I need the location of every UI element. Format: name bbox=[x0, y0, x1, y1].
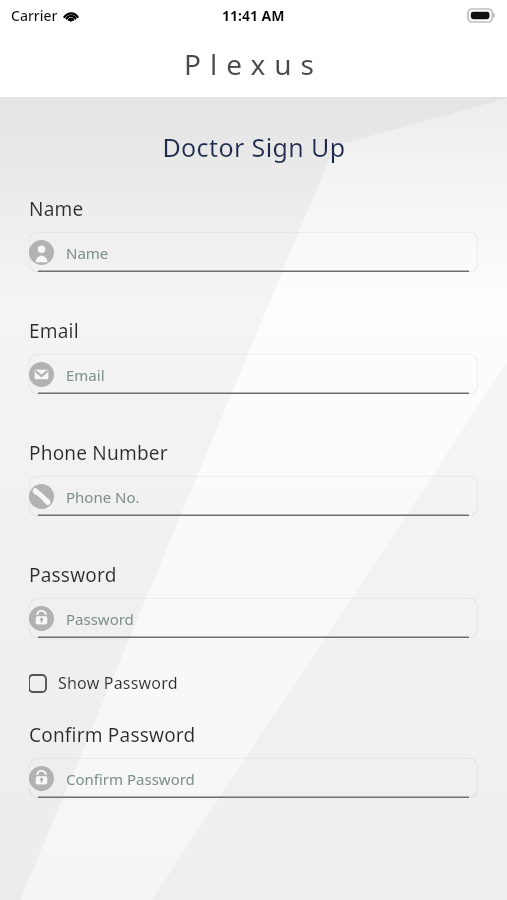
staticText: Confirm Password bbox=[66, 769, 195, 789]
staticText: Carrier bbox=[11, 6, 58, 25]
button[interactable]: Password bbox=[29, 598, 478, 638]
other: Email bbox=[29, 362, 54, 387]
button[interactable]: Name bbox=[29, 232, 478, 272]
button[interactable]: Show Password bbox=[29, 668, 178, 698]
other: Name bbox=[29, 240, 54, 265]
staticText: Password bbox=[29, 562, 117, 588]
button[interactable]: Phone Number bbox=[29, 476, 478, 516]
staticText: Phone No. bbox=[66, 487, 140, 507]
staticText: Confirm Password bbox=[29, 722, 196, 748]
other: Confirm Password bbox=[29, 766, 54, 791]
staticText: Phone Number bbox=[29, 440, 168, 466]
staticText: Plexus bbox=[184, 45, 323, 83]
staticText: Name bbox=[66, 243, 109, 263]
other: Password bbox=[29, 606, 54, 631]
other: Phone Number bbox=[29, 484, 54, 509]
staticText: Show Password bbox=[58, 672, 178, 694]
staticText: Email bbox=[66, 365, 105, 385]
button[interactable]: Confirm Password bbox=[29, 758, 478, 798]
staticText: Name bbox=[29, 196, 84, 222]
staticText: Email bbox=[29, 318, 79, 344]
staticText: Password bbox=[66, 609, 134, 629]
staticText: 11:41 AM bbox=[222, 6, 285, 25]
staticText: Doctor Sign Up bbox=[162, 130, 346, 164]
button[interactable]: Email bbox=[29, 354, 478, 394]
